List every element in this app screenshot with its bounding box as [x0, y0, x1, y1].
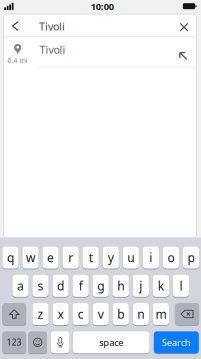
staticText: t	[89, 249, 93, 265]
staticText: space	[99, 336, 123, 348]
staticText: p	[187, 249, 194, 265]
button[interactable]: m	[153, 302, 169, 325]
button[interactable]: Search	[154, 331, 199, 354]
staticText: k	[158, 278, 164, 294]
button[interactable]: t	[83, 246, 99, 269]
button[interactable]: s	[32, 274, 49, 297]
staticText: Tivoli	[39, 42, 65, 57]
staticText: m	[155, 306, 166, 322]
button[interactable]: l	[173, 274, 189, 297]
button[interactable]: p	[183, 246, 199, 269]
staticText: j	[139, 278, 142, 294]
staticText: n	[137, 306, 144, 322]
button[interactable]: Emoji	[28, 331, 47, 354]
staticText: 0.4 mi	[7, 56, 27, 65]
staticText: l	[179, 278, 182, 294]
button[interactable]: z	[32, 302, 49, 325]
staticText: y	[108, 249, 114, 265]
staticText: d	[57, 278, 64, 294]
button[interactable]: i	[143, 246, 159, 269]
button[interactable]: r	[63, 246, 79, 269]
staticText: w	[26, 249, 35, 265]
button[interactable]: w	[22, 246, 39, 269]
staticText: z	[37, 306, 43, 322]
staticText: 10:00	[91, 0, 114, 12]
button[interactable]: space	[73, 331, 149, 354]
button[interactable]: h	[113, 274, 129, 297]
staticText: r	[68, 249, 73, 265]
button[interactable]: j	[133, 274, 149, 297]
button[interactable]: Shift	[2, 302, 26, 325]
button[interactable]: q	[2, 246, 18, 269]
button[interactable]: x	[53, 302, 69, 325]
button[interactable]: e	[42, 246, 59, 269]
staticText: 123	[7, 337, 22, 348]
button[interactable]: v	[93, 302, 109, 325]
button[interactable]: b	[113, 302, 129, 325]
button[interactable]: a	[12, 274, 28, 297]
staticText: u	[127, 249, 134, 265]
staticText: e	[47, 249, 54, 265]
button[interactable]: Back	[8, 19, 24, 33]
staticText: f	[79, 278, 83, 294]
button[interactable]: u	[123, 246, 139, 269]
button[interactable]: 123	[2, 331, 26, 354]
staticText: i	[149, 249, 152, 265]
staticText: v	[98, 306, 104, 322]
staticText: b	[117, 306, 124, 322]
staticText: c	[78, 306, 84, 322]
button[interactable]: f	[73, 274, 89, 297]
staticText: x	[58, 306, 64, 322]
button[interactable]: Delete	[175, 302, 199, 325]
button[interactable]: Clear search	[176, 20, 192, 34]
button[interactable]: 0.4 mi	[3, 37, 195, 67]
button[interactable]: k	[153, 274, 169, 297]
button[interactable]: Insert suggestion	[176, 49, 190, 63]
staticText: s	[37, 278, 43, 294]
button[interactable]: y	[103, 246, 119, 269]
staticText: q	[7, 249, 14, 265]
button[interactable]: c	[73, 302, 89, 325]
staticText: h	[117, 278, 124, 294]
button[interactable]: n	[133, 302, 149, 325]
button[interactable]: g	[93, 274, 109, 297]
staticText: Search	[162, 336, 191, 348]
staticText: g	[97, 278, 104, 294]
button[interactable]: Dictate	[51, 331, 69, 354]
button[interactable]: o	[163, 246, 179, 269]
staticText: o	[167, 249, 174, 265]
staticText: Tivoli	[39, 19, 65, 33]
button[interactable]: d	[52, 274, 69, 297]
staticText: a	[17, 278, 24, 294]
